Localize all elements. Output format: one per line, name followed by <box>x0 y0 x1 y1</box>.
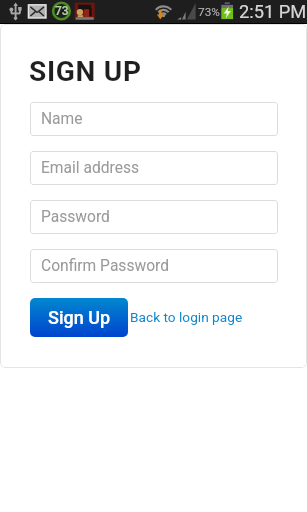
button[interactable]: Name <box>30 102 278 136</box>
staticText: Confirm Password <box>41 257 170 275</box>
button[interactable]: Confirm Password <box>30 249 278 283</box>
staticText: 73 <box>55 4 69 18</box>
staticText: Sign Up <box>48 307 111 328</box>
staticText: 73% <box>198 5 220 19</box>
button[interactable]: Email address <box>30 151 278 185</box>
staticText: SIGN UP <box>29 55 142 88</box>
button[interactable]: Password <box>30 200 278 234</box>
staticText: Name <box>41 110 83 128</box>
button[interactable]: Sign Up <box>30 298 128 337</box>
staticText: Email address <box>41 159 140 177</box>
staticText: 2:51 PM <box>239 1 307 22</box>
staticText: Back to login page <box>130 309 243 325</box>
button[interactable]: Back to login page <box>130 309 243 325</box>
staticText: Password <box>41 208 110 226</box>
